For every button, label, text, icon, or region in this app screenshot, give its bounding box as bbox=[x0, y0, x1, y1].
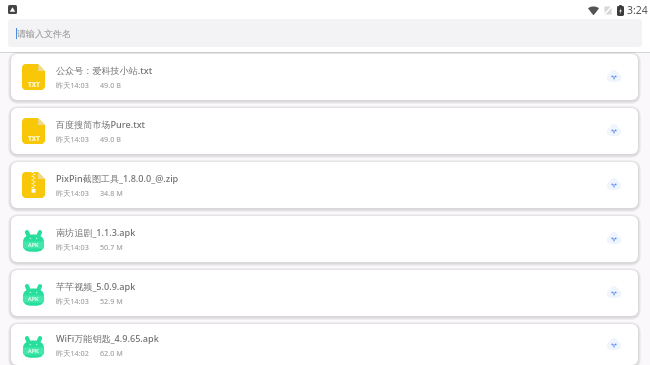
button[interactable]: APK bbox=[11, 270, 638, 316]
staticText: PixPin截图工具_1.8.0.0_@.zip bbox=[56, 172, 179, 184]
button[interactable]: Upload to cloud bbox=[604, 283, 624, 303]
staticText: 50.7 M bbox=[100, 242, 123, 252]
button[interactable]: APK bbox=[11, 324, 638, 365]
staticText: 昨天14:03 bbox=[56, 188, 89, 198]
staticText: 昨天14:03 bbox=[56, 80, 89, 90]
staticText: 52.9 M bbox=[100, 296, 123, 306]
staticText: 3:24 bbox=[627, 3, 648, 17]
staticText: APK bbox=[28, 347, 39, 355]
button[interactable]: Upload to cloud bbox=[604, 335, 624, 355]
staticText: 62.0 M bbox=[100, 348, 123, 358]
staticText: 昨天14:03 bbox=[56, 296, 89, 306]
staticText: WiFi万能钥匙_4.9.65.apk bbox=[56, 332, 159, 344]
staticText: 49.0 B bbox=[100, 80, 121, 90]
button[interactable]: TXT bbox=[11, 108, 638, 154]
staticText: 百度搜简市场Pure.txt bbox=[56, 118, 146, 130]
button[interactable]: PixPin截图工具_1.8.0.0_@.zip bbox=[11, 162, 638, 208]
staticText: 公众号：爱科技小站.txt bbox=[56, 64, 153, 76]
button[interactable]: 请输入文件名 bbox=[8, 19, 642, 47]
button[interactable]: Upload to cloud bbox=[604, 229, 624, 249]
staticText: APK bbox=[28, 295, 39, 303]
staticText: APK bbox=[28, 241, 39, 249]
button[interactable]: TXT bbox=[11, 54, 638, 100]
staticText: TXT bbox=[28, 80, 40, 89]
button[interactable]: Upload to cloud bbox=[604, 121, 624, 141]
staticText: 南坊追剧_1.1.3.apk bbox=[56, 226, 136, 238]
staticText: 请输入文件名 bbox=[17, 28, 71, 39]
staticText: 34.8 M bbox=[100, 188, 123, 198]
button[interactable]: Upload to cloud bbox=[604, 175, 624, 195]
button[interactable]: APK bbox=[11, 216, 638, 262]
staticText: 昨天14:02 bbox=[56, 348, 89, 358]
staticText: TXT bbox=[28, 134, 40, 143]
staticText: 昨天14:03 bbox=[56, 242, 89, 252]
staticText: 昨天14:03 bbox=[56, 134, 89, 144]
staticText: 芊芊视频_5.0.9.apk bbox=[56, 280, 136, 292]
staticText: 49.0 B bbox=[100, 134, 121, 144]
button[interactable]: Upload to cloud bbox=[604, 67, 624, 87]
